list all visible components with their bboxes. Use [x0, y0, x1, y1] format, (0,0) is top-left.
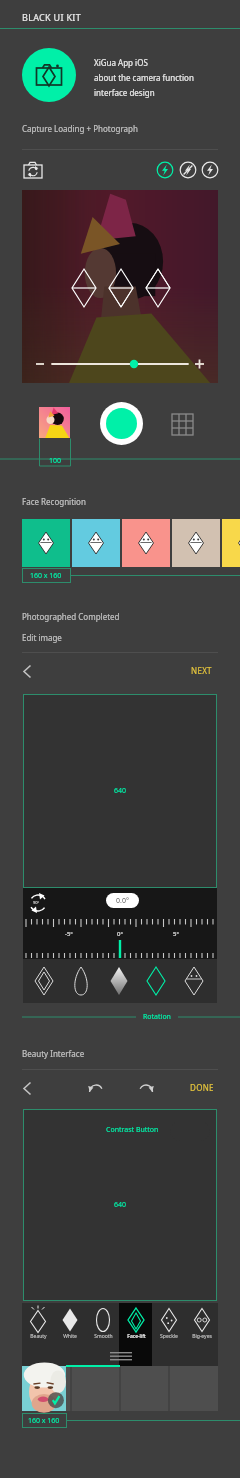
staticText: White — [63, 1333, 77, 1340]
staticText: 90° — [33, 900, 40, 905]
staticText: 160 x 160 — [30, 571, 62, 581]
staticText: Rotation — [143, 1012, 171, 1022]
button[interactable]: Face style 4 — [172, 519, 220, 567]
staticText: Smooth — [94, 1333, 113, 1340]
button[interactable]: Face style 3 — [122, 519, 170, 567]
staticText: Speckle — [160, 1333, 178, 1340]
staticText: Photographed Completed — [22, 611, 120, 622]
staticText: 0.0° — [116, 896, 129, 906]
button[interactable]: Beauty — [22, 1303, 54, 1366]
staticText: -5° — [65, 930, 73, 938]
button[interactable]: App icon — [22, 48, 76, 102]
staticText: 160 x 160 — [28, 1416, 60, 1426]
staticText: 5° — [173, 930, 180, 938]
button[interactable]: Face style 1 — [22, 519, 70, 567]
staticText: 100 — [49, 456, 62, 466]
button[interactable]: Shutter — [100, 402, 143, 445]
staticText: BLACK UI KIT — [22, 11, 81, 23]
button[interactable]: Back — [19, 1079, 37, 1097]
staticText: Capture Loading + Photograph — [22, 123, 138, 134]
button[interactable]: NEXT — [191, 665, 212, 676]
staticText: Face Recognition — [22, 496, 86, 507]
staticText: Big-eyes — [192, 1333, 212, 1340]
button[interactable]: Edited photo — [22, 1366, 66, 1411]
button[interactable]: Face-lift — [119, 1303, 152, 1366]
button[interactable]: Flash auto — [156, 161, 174, 179]
staticText: NEXT — [191, 665, 212, 676]
button[interactable]: Undo — [87, 1080, 105, 1098]
button[interactable]: Speckle — [152, 1303, 185, 1366]
button[interactable]: White — [54, 1303, 86, 1366]
button[interactable]: Face style 2 — [72, 519, 120, 567]
button[interactable]: Last photo — [39, 407, 70, 438]
staticText: Beauty — [30, 1333, 47, 1340]
staticText: interface design — [94, 87, 155, 98]
button[interactable]: Smooth — [86, 1303, 119, 1366]
button[interactable]: 0.0° — [106, 893, 139, 908]
button[interactable]: Face style 5 — [222, 519, 240, 567]
button[interactable]: Flash on — [201, 161, 219, 179]
staticText: Face-lift — [127, 1333, 146, 1340]
button[interactable]: Redo — [137, 1080, 155, 1098]
staticText: DONE — [190, 1082, 214, 1093]
staticText: Edit image — [22, 632, 62, 643]
staticText: Beauty Interface — [22, 1048, 85, 1059]
staticText: 640 — [114, 1200, 127, 1210]
button[interactable]: Switch camera — [22, 160, 44, 180]
staticText: 640 — [114, 786, 127, 796]
staticText: Contrast Button — [106, 1125, 159, 1135]
staticText: XiGua App iOS — [94, 57, 148, 68]
staticText: about the camera function — [94, 72, 194, 83]
button[interactable]: Back — [19, 662, 37, 680]
button[interactable]: DONE — [190, 1082, 214, 1093]
button[interactable]: Flash off — [179, 161, 197, 179]
button[interactable]: Big-eyes — [185, 1303, 218, 1366]
button[interactable]: Grid — [171, 413, 195, 437]
staticText: 0° — [117, 930, 124, 938]
